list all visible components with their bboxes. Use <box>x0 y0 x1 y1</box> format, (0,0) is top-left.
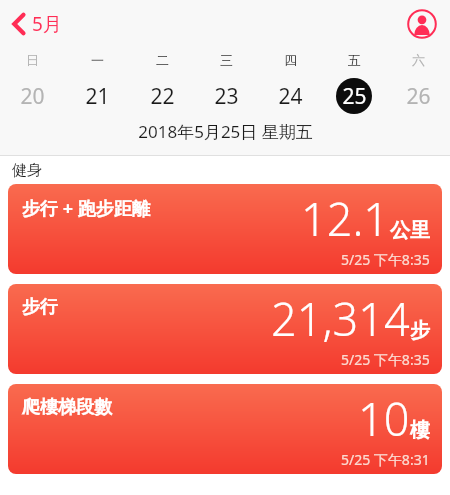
staticText: 三 <box>220 52 233 68</box>
staticText: 五 <box>348 52 361 68</box>
staticText: 二 <box>156 52 169 68</box>
staticText: 四 <box>284 52 297 68</box>
staticText: 25 <box>342 82 367 111</box>
staticText: 21,314 <box>271 288 410 349</box>
button[interactable]: 步行 + 跑步距離 <box>8 184 442 274</box>
button[interactable]: Profile <box>407 9 437 39</box>
staticText: 5/25 下午8:31 <box>341 450 430 469</box>
button[interactable]: 步行 <box>8 284 442 374</box>
staticText: 5月 <box>32 11 62 37</box>
button[interactable]: 24 <box>258 82 322 111</box>
staticText: 5/25 下午8:35 <box>341 350 430 369</box>
staticText: 健身 <box>12 161 42 180</box>
staticText: 樓 <box>410 418 430 443</box>
staticText: 26 <box>406 82 431 111</box>
staticText: 22 <box>150 82 175 111</box>
button[interactable]: 23 <box>194 82 258 111</box>
staticText: 步 <box>410 318 430 343</box>
staticText: 5/25 下午8:35 <box>341 250 430 269</box>
staticText: 2018年5月25日 星期五 <box>138 120 313 143</box>
staticText: 24 <box>278 82 303 111</box>
staticText: 20 <box>20 82 45 111</box>
staticText: 12.1 <box>301 188 390 249</box>
button[interactable]: 26 <box>386 82 450 111</box>
staticText: 爬樓梯段數 <box>22 396 112 419</box>
staticText: 10 <box>358 388 410 449</box>
button[interactable]: 22 <box>130 82 194 111</box>
button[interactable]: 爬樓梯段數 <box>8 384 442 474</box>
button[interactable]: 20 <box>0 82 65 111</box>
button[interactable]: 5月 <box>8 7 66 41</box>
staticText: 步行 + 跑步距離 <box>22 196 150 221</box>
button[interactable]: 25 <box>322 78 386 114</box>
staticText: 六 <box>412 52 425 68</box>
staticText: 步行 <box>22 296 58 319</box>
staticText: 公里 <box>390 218 430 243</box>
staticText: 日 <box>26 52 39 68</box>
button[interactable]: 21 <box>65 82 130 111</box>
staticText: 23 <box>214 82 239 111</box>
staticText: 21 <box>85 82 110 111</box>
staticText: 一 <box>91 52 104 68</box>
